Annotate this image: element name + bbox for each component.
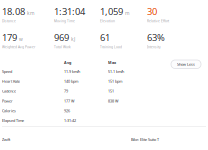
staticText: w	[19, 36, 23, 42]
staticText: 18.08	[2, 5, 25, 18]
staticText: Cadence	[2, 89, 16, 94]
staticText: 926	[64, 108, 70, 113]
staticText: Relative Effort	[147, 19, 169, 23]
staticText: Distance	[2, 19, 16, 23]
staticText: Intensity	[147, 45, 161, 49]
staticText: Weighted Avg Power	[2, 45, 35, 49]
staticText: Zwift	[2, 137, 10, 142]
staticText: 11.9 km/h	[64, 69, 80, 74]
staticText: m	[125, 10, 129, 16]
staticText: Total Work	[54, 45, 71, 49]
staticText: Show Less	[177, 62, 195, 67]
staticText: 151	[108, 89, 114, 94]
staticText: km	[27, 10, 34, 16]
staticText: 969	[54, 31, 69, 44]
button[interactable]: Show Less	[171, 60, 201, 68]
staticText: 61	[100, 31, 110, 44]
staticText: 179	[2, 31, 17, 44]
staticText: Bike: Elite Suito T	[131, 137, 159, 142]
staticText: 151 bpm	[108, 79, 122, 84]
staticText: 79	[64, 89, 68, 94]
staticText: 1:31:04	[54, 5, 85, 18]
staticText: Max	[108, 60, 116, 65]
staticText: 177 W	[64, 98, 74, 103]
staticText: Moving Time	[54, 19, 75, 23]
staticText: 51.1 km/h	[108, 69, 124, 74]
staticText: 838 W	[108, 98, 118, 103]
staticText: Elapsed Time	[2, 118, 24, 123]
staticText: kJ	[71, 36, 75, 42]
staticText: Avg	[64, 60, 71, 65]
staticText: Speed	[2, 69, 12, 74]
staticText: 63%	[147, 31, 165, 44]
staticText: Elevation	[100, 19, 115, 23]
staticText: 30	[147, 5, 157, 18]
staticText: 140 bpm	[64, 79, 78, 84]
staticText: Power	[2, 98, 13, 103]
staticText: 1,059	[100, 5, 123, 18]
staticText: Training Load	[100, 45, 122, 49]
staticText: Heart Rate	[2, 79, 20, 84]
staticText: 1:31:42	[64, 118, 76, 123]
staticText: Calories	[2, 108, 16, 113]
